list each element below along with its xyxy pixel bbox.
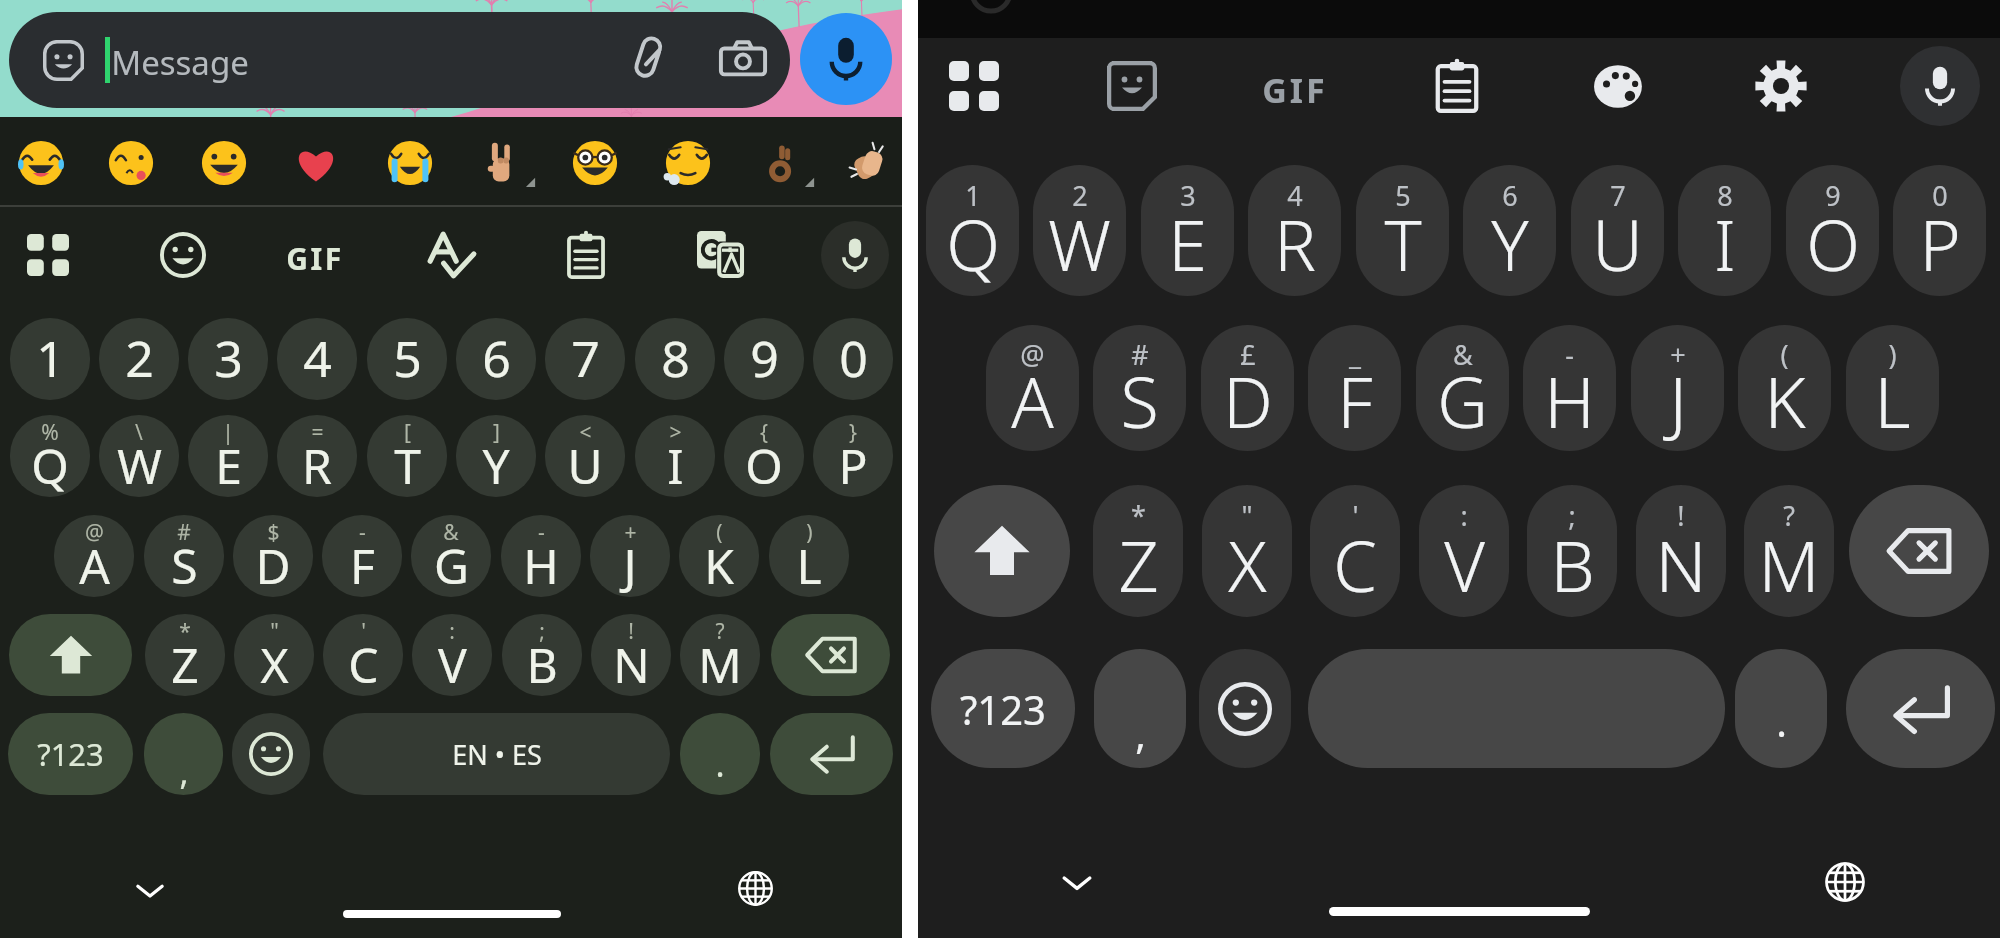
button[interactable]: = — [277, 415, 357, 497]
button[interactable]: Emoji — [1199, 649, 1291, 768]
button[interactable]: } — [813, 415, 893, 497]
button[interactable]: Change language — [1824, 861, 1866, 903]
button[interactable]: * — [1093, 485, 1183, 617]
button[interactable]: Voice input — [821, 221, 889, 289]
button[interactable]: 4 — [1248, 165, 1341, 296]
button[interactable]: OK hand — [758, 140, 804, 186]
button[interactable]: All apps — [27, 234, 69, 276]
button[interactable]: # — [1093, 325, 1186, 451]
button[interactable]: Enter — [1846, 649, 1995, 768]
button[interactable]: 8 — [1678, 165, 1771, 296]
button[interactable]: , — [144, 713, 223, 795]
button[interactable]: ?123 — [8, 713, 133, 795]
button[interactable]: # — [144, 515, 224, 597]
button[interactable]: Smile — [201, 140, 247, 186]
button[interactable]: . — [680, 713, 760, 795]
button[interactable]: GIF — [282, 238, 348, 272]
button[interactable]: 2 — [1033, 165, 1126, 296]
button[interactable]: 0 — [813, 318, 893, 400]
button[interactable]: 9 — [1786, 165, 1879, 296]
button[interactable]: * — [145, 614, 225, 696]
button[interactable]: Voice input — [1900, 46, 1980, 126]
button[interactable]: Camera — [719, 36, 767, 84]
button[interactable]: 3 — [1141, 165, 1234, 296]
button[interactable]: ? — [680, 614, 760, 696]
button[interactable]: Shift — [934, 485, 1070, 617]
button[interactable]: 6 — [456, 318, 536, 400]
button[interactable]: Text editing — [426, 229, 478, 281]
button[interactable]: @ — [986, 325, 1079, 451]
button[interactable]: 4 — [277, 318, 357, 400]
button[interactable]: Heart — [293, 140, 339, 186]
button[interactable]: Voice input — [800, 13, 892, 105]
button[interactable]: Shift — [9, 614, 132, 696]
button[interactable]: 0 — [1893, 165, 1986, 296]
button[interactable]: [ — [367, 415, 447, 497]
button[interactable]: Backspace — [1849, 485, 1989, 617]
button[interactable]: Translate — [697, 231, 745, 279]
button[interactable]: 8 — [635, 318, 715, 400]
button[interactable]: Sob — [387, 140, 433, 186]
button[interactable]: £ — [1201, 325, 1294, 451]
button[interactable]: EN • ES — [323, 713, 670, 795]
button[interactable]: ! — [1636, 485, 1726, 617]
button[interactable]: _ — [1308, 325, 1401, 451]
button[interactable]: { — [724, 415, 804, 497]
button[interactable]: ? — [1744, 485, 1834, 617]
button[interactable]: : — [412, 614, 492, 696]
button[interactable]: % — [10, 415, 90, 497]
button[interactable]: ! — [591, 614, 671, 696]
button[interactable]: Hide keyboard — [1057, 862, 1097, 902]
button[interactable]: Clap — [845, 140, 891, 186]
button[interactable]: Nerd — [572, 140, 618, 186]
button[interactable]: - — [501, 515, 581, 597]
button[interactable]: All apps — [949, 61, 999, 111]
button[interactable]: ; — [1527, 485, 1617, 617]
button[interactable]: | — [188, 415, 268, 497]
button[interactable]: Message — [9, 12, 790, 108]
button[interactable]: " — [234, 614, 314, 696]
button[interactable]: ; — [502, 614, 582, 696]
button[interactable]: Clipboard — [563, 232, 609, 278]
button[interactable]: 5 — [1356, 165, 1449, 296]
button[interactable]: 1 — [10, 318, 90, 400]
button[interactable]: ] — [456, 415, 536, 497]
button[interactable]: . — [1735, 649, 1827, 768]
button[interactable]: , — [1094, 649, 1186, 768]
button[interactable]: 3 — [188, 318, 268, 400]
button[interactable]: ( — [1738, 325, 1831, 451]
button[interactable]: Enter — [770, 713, 893, 795]
button[interactable]: GIF — [1255, 67, 1335, 105]
button[interactable]: " — [1202, 485, 1292, 617]
button[interactable]: - — [322, 515, 402, 597]
button[interactable]: ?123 — [931, 649, 1075, 768]
button[interactable]: - — [1523, 325, 1616, 451]
button[interactable]: 1 — [926, 165, 1019, 296]
button[interactable]: Space — [1308, 649, 1725, 768]
button[interactable]: Attach — [624, 34, 672, 82]
button[interactable]: + — [1631, 325, 1724, 451]
button[interactable]: Rock on — [479, 140, 525, 186]
button[interactable]: Clipboard — [1431, 60, 1483, 112]
button[interactable]: : — [1419, 485, 1509, 617]
button[interactable]: Settings — [1755, 60, 1807, 112]
button[interactable]: Themes — [1593, 60, 1645, 112]
button[interactable]: 5 — [367, 318, 447, 400]
button[interactable]: ' — [1310, 485, 1400, 617]
button[interactable]: Kiss — [108, 140, 154, 186]
button[interactable]: < — [545, 415, 625, 497]
button[interactable]: Sleepy — [665, 140, 711, 186]
button[interactable]: ' — [323, 614, 403, 696]
button[interactable]: ( — [679, 515, 759, 597]
button[interactable]: 6 — [1463, 165, 1556, 296]
button[interactable]: & — [1416, 325, 1509, 451]
button[interactable]: 7 — [1571, 165, 1664, 296]
button[interactable]: 7 — [545, 318, 625, 400]
button[interactable]: Stickers — [1107, 61, 1157, 111]
button[interactable]: ) — [769, 515, 849, 597]
button[interactable]: Emoji — [160, 232, 206, 278]
button[interactable]: Emoji — [232, 713, 310, 795]
button[interactable]: Hide keyboard — [131, 871, 169, 909]
button[interactable]: 2 — [99, 318, 179, 400]
button[interactable]: 9 — [724, 318, 804, 400]
